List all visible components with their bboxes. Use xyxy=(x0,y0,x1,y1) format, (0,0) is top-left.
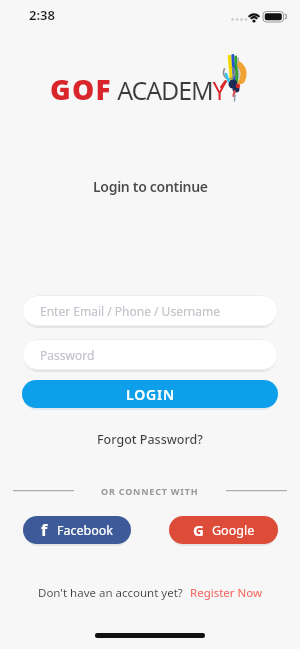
staticText: OR CONNECT WITH xyxy=(101,485,199,497)
staticText: GOF ACADEMY xyxy=(50,70,227,108)
staticText: Google xyxy=(212,522,255,539)
staticText: LOGIN xyxy=(126,385,175,404)
staticText: Login to continue xyxy=(93,177,208,196)
button[interactable]: Register Now xyxy=(190,585,263,601)
button[interactable]: Password xyxy=(22,339,278,370)
staticText: Password xyxy=(40,347,95,363)
button[interactable]: Forgot Password? xyxy=(97,431,203,448)
button[interactable]: f xyxy=(23,516,131,544)
staticText: Facebook xyxy=(57,522,114,539)
staticText: G xyxy=(193,520,204,540)
staticText: Don't have an account yet? xyxy=(38,585,183,601)
button[interactable]: G xyxy=(169,516,278,544)
staticText: Enter Email / Phone / Username xyxy=(40,303,220,319)
button[interactable]: LOGIN xyxy=(22,380,278,408)
staticText: 2:38 xyxy=(29,6,55,24)
staticText: f xyxy=(41,519,48,541)
button[interactable]: Enter Email / Phone / Username xyxy=(22,295,278,326)
